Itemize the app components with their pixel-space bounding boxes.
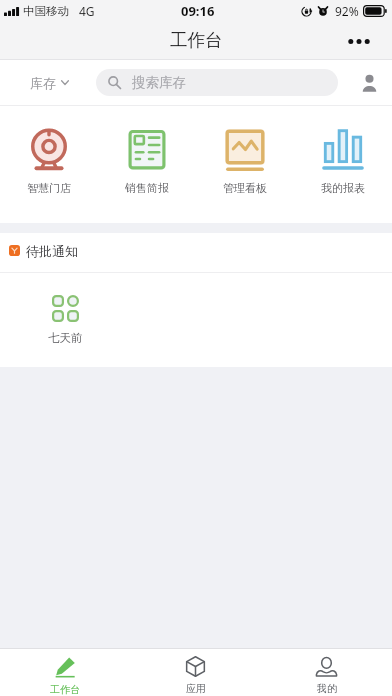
button[interactable]: 销售简报 [98,106,196,223]
staticText: 4G [79,3,95,19]
staticText: 我的 [317,682,337,695]
button[interactable]: 管理看板 [196,106,294,223]
staticText: 智慧门店 [27,181,71,195]
button[interactable]: 应用 [130,649,261,696]
staticText: 管理看板 [223,181,267,195]
staticText: 销售简报 [125,181,169,195]
button[interactable]: 库存 [0,60,96,105]
button[interactable]: 我的 [261,649,392,696]
staticText: 中国移动 [23,4,69,18]
staticText: 我的报表 [321,181,365,195]
staticText: 09:16 [181,2,215,20]
staticText: 库存 [30,75,56,91]
staticText: 七天前 [48,331,83,345]
staticText: 搜索库存 [132,74,186,91]
button[interactable]: Account [348,60,390,105]
button[interactable]: 我的报表 [294,106,392,223]
button[interactable]: More options [326,22,392,59]
button[interactable]: 工作台 [0,649,130,696]
staticText: 工作台 [170,29,223,51]
staticText: 92% [335,3,359,19]
staticText: 工作台 [50,683,80,696]
staticText: 应用 [186,682,206,695]
staticText: 待批通知 [26,243,78,259]
button[interactable]: 智慧门店 [0,106,98,223]
button[interactable]: 搜索库存 [96,69,338,96]
button[interactable]: 七天前 [0,273,131,367]
